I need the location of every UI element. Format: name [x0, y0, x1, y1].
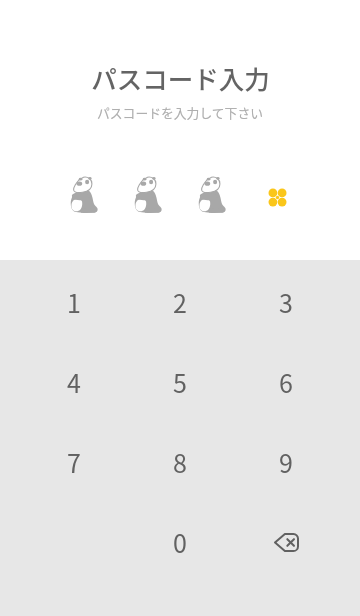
staticText: 7 — [67, 444, 81, 480]
button[interactable]: 4 — [21, 342, 127, 422]
staticText: パスコードを入力して下さい — [97, 103, 263, 122]
staticText: 1 — [67, 284, 81, 320]
button[interactable]: Delete — [233, 502, 339, 582]
button[interactable]: 6 — [233, 342, 339, 422]
staticText: 6 — [279, 364, 293, 400]
other: Delete — [274, 533, 299, 552]
button[interactable]: 7 — [21, 422, 127, 502]
staticText: 2 — [173, 284, 187, 320]
button[interactable]: 3 — [233, 262, 339, 342]
staticText: 0 — [173, 524, 187, 560]
button[interactable]: 1 — [21, 262, 127, 342]
button[interactable]: 0 — [127, 502, 233, 582]
staticText: 9 — [279, 444, 293, 480]
button[interactable]: 5 — [127, 342, 233, 422]
staticText: パスコード入力 — [91, 59, 270, 96]
staticText: 4 — [67, 364, 81, 400]
staticText: 5 — [173, 364, 187, 400]
button[interactable]: 2 — [127, 262, 233, 342]
button[interactable]: 9 — [233, 422, 339, 502]
staticText: 3 — [279, 284, 293, 320]
button[interactable]: 8 — [127, 422, 233, 502]
staticText: 8 — [173, 444, 187, 480]
